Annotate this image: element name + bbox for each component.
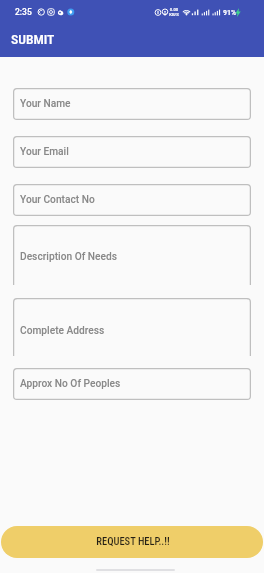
button[interactable]: Complete Address	[13, 298, 251, 356]
staticText: Approx No Of Peoples	[20, 378, 121, 390]
staticText: Description Of Needs	[20, 251, 118, 263]
button[interactable]: Your Email	[13, 136, 251, 168]
button[interactable]: Description Of Needs	[13, 225, 251, 285]
staticText: 0.00 KB/S	[169, 7, 179, 17]
staticText: Your Contact No	[20, 194, 95, 206]
other: System status	[154, 8, 232, 17]
button[interactable]: Your Name	[13, 88, 251, 120]
staticText: Complete Address	[20, 325, 105, 337]
button[interactable]: Your Contact No	[13, 184, 251, 216]
staticText: SUBMIT	[11, 31, 55, 47]
button[interactable]: REQUEST HELP..!!	[1, 526, 263, 558]
staticText: Your Name	[20, 98, 71, 110]
other: Charging	[235, 8, 241, 17]
staticText: 91%	[223, 8, 237, 17]
staticText: REQUEST HELP..!!	[96, 535, 170, 547]
other: Notifications	[38, 8, 78, 16]
staticText: Your Email	[20, 146, 69, 158]
staticText: 2:35	[15, 7, 32, 17]
button[interactable]: Approx No Of Peoples	[13, 368, 251, 400]
